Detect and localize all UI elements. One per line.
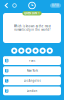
staticText: D [6,89,8,93]
staticText: New York [26,69,37,72]
staticText: Which is known as the most romantic city… [13,24,50,32]
button[interactable]: 0/10 [50,3,61,8]
button[interactable]: New York [3,66,61,75]
staticText: B [6,69,8,72]
button[interactable]: London [3,86,61,95]
staticText: C [6,79,8,82]
staticText: Paris [29,59,35,62]
staticText: 0/10 [52,4,59,7]
button[interactable]: Back [3,1,10,10]
button[interactable]: Paris [3,56,61,65]
button[interactable]: Los Angeles [3,76,61,85]
button[interactable]: Ask audience [32,48,39,54]
button[interactable]: Share [47,48,53,54]
button[interactable]: Sound [12,1,17,10]
button[interactable]: Timer [28,1,36,9]
staticText: London [26,89,37,93]
staticText: QUESTION 1 [24,11,40,15]
button[interactable]: Fifty fifty [11,48,17,54]
staticText: A [6,59,8,62]
button[interactable]: Hint [25,48,32,54]
staticText: Los Angeles [23,79,40,82]
button[interactable]: Extra time [39,48,46,54]
button[interactable]: Skip question [18,48,24,54]
